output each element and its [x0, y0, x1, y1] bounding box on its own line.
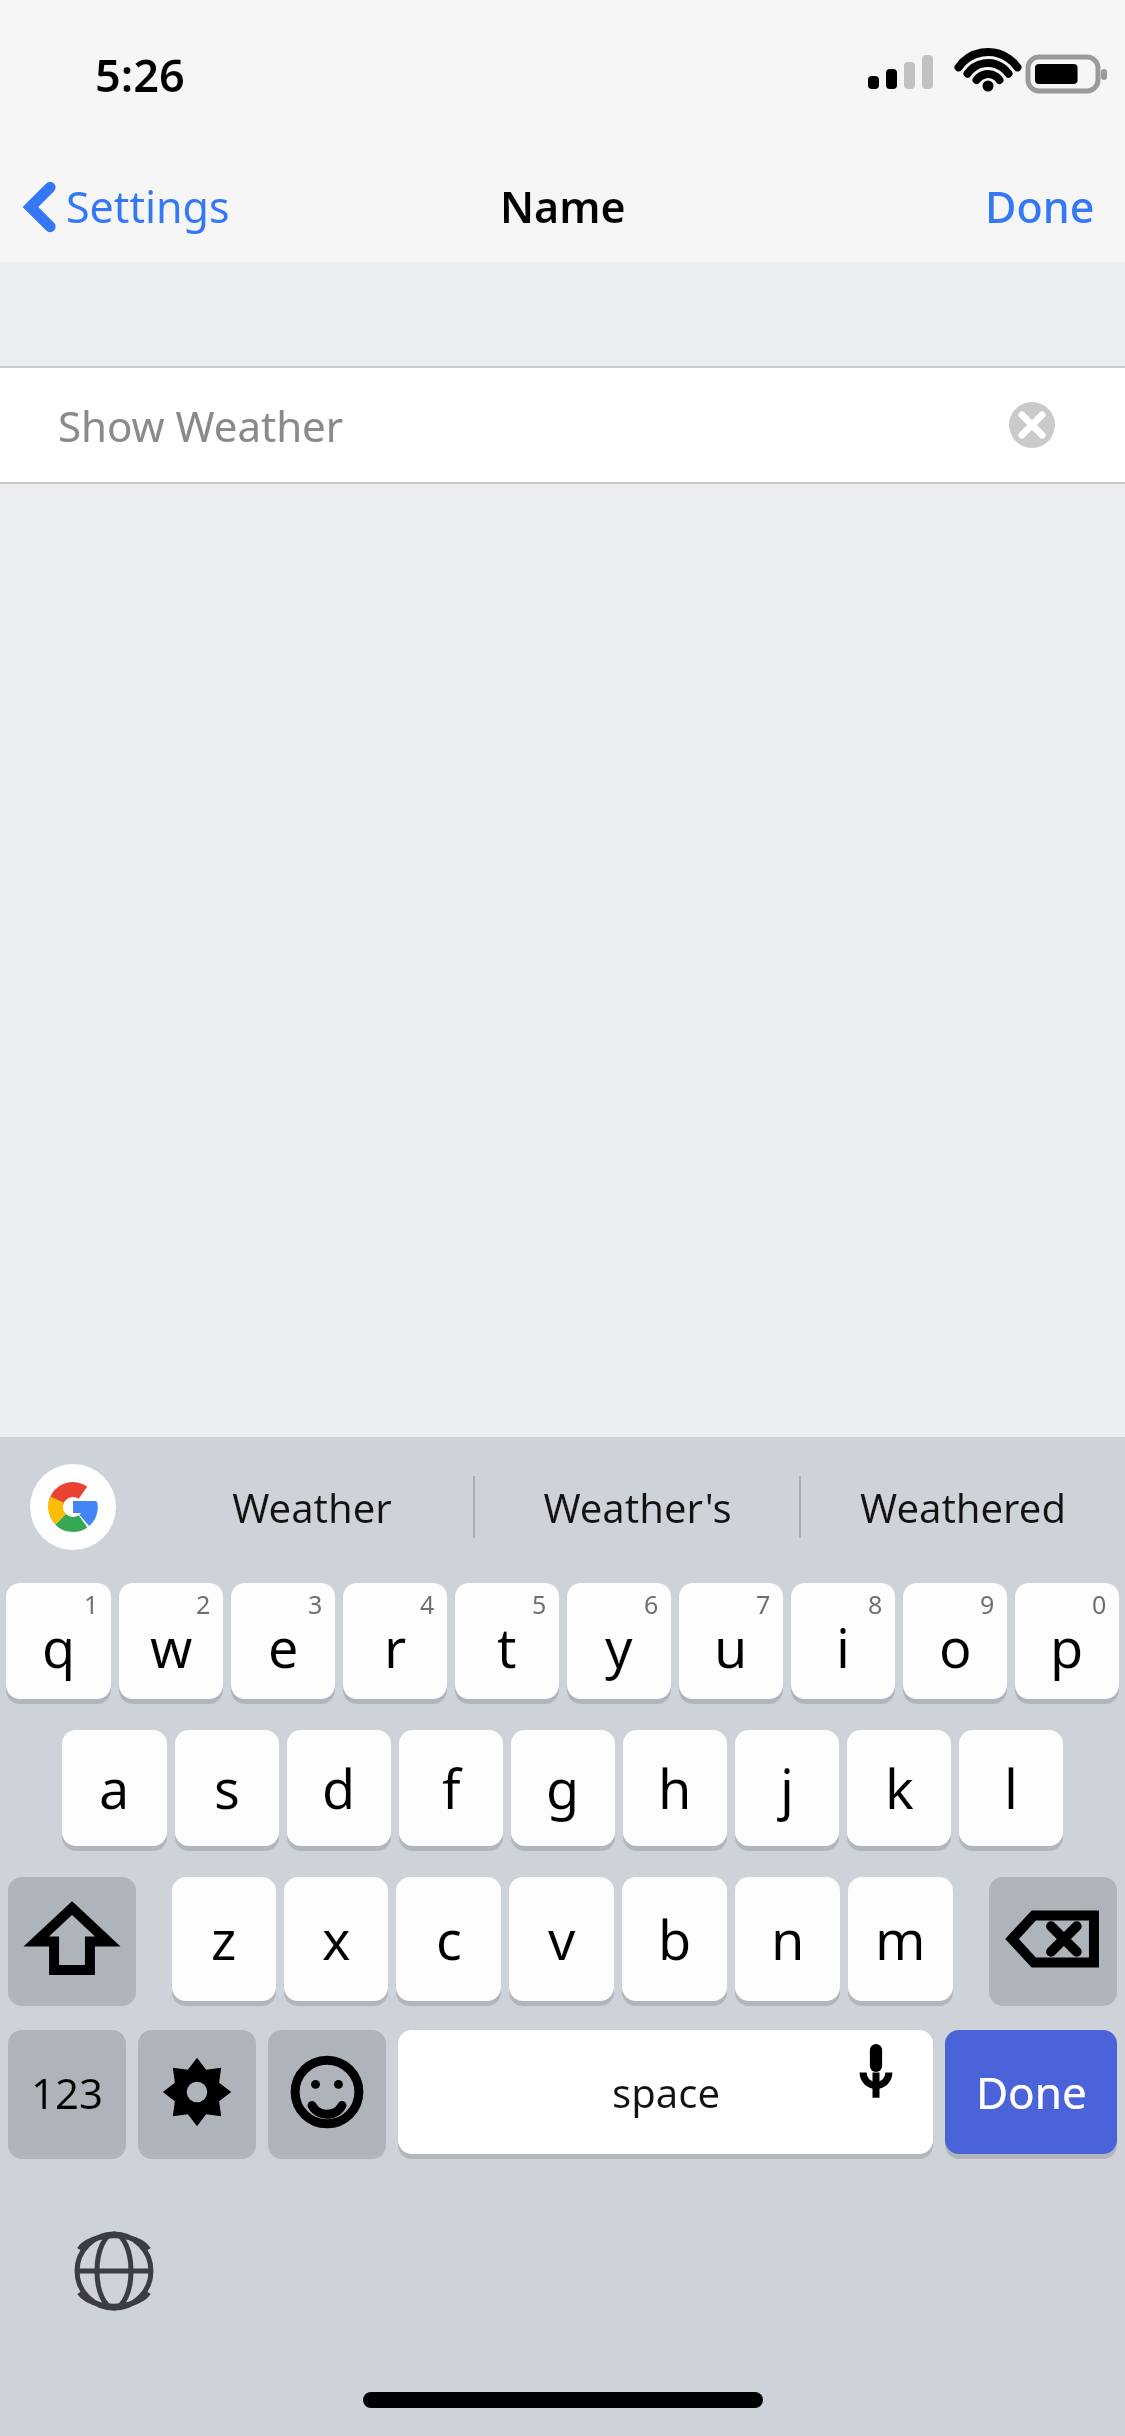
- staticText: Weather: [232, 1480, 392, 1534]
- button[interactable]: j: [735, 1730, 839, 1851]
- staticText: o: [939, 1610, 972, 1684]
- staticText: s: [214, 1751, 240, 1825]
- button[interactable]: a: [62, 1730, 167, 1851]
- staticText: b: [658, 1902, 692, 1976]
- button[interactable]: Weathered: [801, 1480, 1125, 1534]
- staticText: h: [658, 1751, 692, 1825]
- button[interactable]: Settings: [22, 177, 230, 236]
- button[interactable]: b: [622, 1877, 727, 2006]
- button[interactable]: h: [623, 1730, 727, 1851]
- button[interactable]: Show Weather: [0, 368, 1125, 482]
- staticText: w: [150, 1610, 193, 1684]
- button[interactable]: Keyboard settings: [138, 2030, 256, 2159]
- staticText: 2: [196, 1587, 211, 1621]
- button[interactable]: Done: [945, 2030, 1117, 2159]
- staticText: a: [99, 1751, 130, 1825]
- button[interactable]: Clear text: [1009, 402, 1055, 448]
- staticText: 5: [532, 1587, 547, 1621]
- button[interactable]: u: [679, 1583, 783, 1704]
- button[interactable]: Done: [985, 177, 1095, 236]
- button[interactable]: r: [343, 1583, 447, 1704]
- staticText: j: [780, 1751, 794, 1825]
- button[interactable]: n: [735, 1877, 840, 2006]
- staticText: space: [612, 2065, 720, 2119]
- button[interactable]: t: [455, 1583, 559, 1704]
- button[interactable]: 123: [8, 2030, 126, 2159]
- staticText: f: [442, 1751, 461, 1825]
- staticText: l: [1004, 1751, 1018, 1825]
- button[interactable]: p: [1015, 1583, 1119, 1704]
- staticText: 0: [1092, 1587, 1107, 1621]
- button[interactable]: f: [399, 1730, 503, 1851]
- button[interactable]: d: [287, 1730, 391, 1851]
- staticText: Name: [500, 177, 626, 236]
- button[interactable]: v: [509, 1877, 614, 2006]
- staticText: c: [436, 1902, 462, 1976]
- staticText: d: [322, 1751, 356, 1825]
- staticText: 123: [31, 2064, 104, 2121]
- staticText: 4: [420, 1587, 435, 1621]
- staticText: g: [546, 1751, 580, 1825]
- button[interactable]: m: [848, 1877, 953, 2006]
- staticText: x: [322, 1902, 351, 1976]
- staticText: Settings: [66, 177, 230, 236]
- button[interactable]: w: [119, 1583, 223, 1704]
- button[interactable]: k: [847, 1730, 951, 1851]
- staticText: e: [268, 1610, 299, 1684]
- button[interactable]: y: [567, 1583, 671, 1704]
- button[interactable]: Weather: [150, 1480, 473, 1534]
- staticText: 7: [756, 1587, 771, 1621]
- staticText: u: [714, 1610, 748, 1684]
- button[interactable]: g: [511, 1730, 615, 1851]
- staticText: n: [771, 1902, 805, 1976]
- staticText: 3: [308, 1587, 323, 1621]
- staticText: i: [836, 1610, 850, 1684]
- button[interactable]: Emoji: [268, 2030, 386, 2159]
- staticText: 5:26: [95, 44, 185, 105]
- staticText: z: [211, 1902, 237, 1976]
- button[interactable]: x: [284, 1877, 388, 2006]
- staticText: Done: [985, 177, 1095, 236]
- button[interactable]: e: [231, 1583, 335, 1704]
- button[interactable]: Change keyboard language: [72, 2229, 156, 2313]
- button[interactable]: l: [959, 1730, 1063, 1851]
- staticText: k: [885, 1751, 914, 1825]
- button[interactable]: Backspace: [989, 1877, 1117, 2006]
- staticText: v: [548, 1902, 576, 1976]
- staticText: 6: [644, 1587, 659, 1621]
- button[interactable]: Weather's: [475, 1480, 799, 1534]
- button[interactable]: c: [396, 1877, 501, 2006]
- staticText: Weathered: [860, 1480, 1066, 1534]
- button[interactable]: o: [903, 1583, 1007, 1704]
- staticText: r: [384, 1610, 407, 1684]
- staticText: Done: [976, 2062, 1087, 2122]
- staticText: Show Weather: [58, 397, 344, 454]
- staticText: p: [1050, 1610, 1084, 1684]
- staticText: m: [875, 1902, 926, 1976]
- button[interactable]: space: [398, 2030, 933, 2159]
- staticText: Weather's: [543, 1480, 732, 1534]
- button[interactable]: i: [791, 1583, 895, 1704]
- staticText: t: [497, 1610, 517, 1684]
- button[interactable]: s: [175, 1730, 279, 1851]
- staticText: 8: [868, 1587, 883, 1621]
- button[interactable]: Google search: [30, 1464, 116, 1550]
- staticText: q: [42, 1610, 76, 1684]
- button[interactable]: q: [6, 1583, 111, 1704]
- button[interactable]: Shift: [8, 1877, 136, 2006]
- staticText: 9: [980, 1587, 995, 1621]
- staticText: 1: [84, 1587, 99, 1621]
- button[interactable]: z: [172, 1877, 276, 2006]
- staticText: y: [605, 1610, 633, 1684]
